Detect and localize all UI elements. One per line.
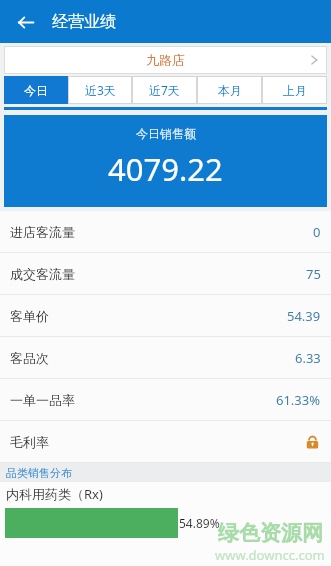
staticText: 4079.22: [108, 148, 223, 190]
staticText: 一单一品率: [10, 392, 75, 408]
staticText: 75: [306, 265, 321, 283]
staticText: 毛利率: [10, 434, 49, 450]
other: Locked: [303, 433, 321, 451]
staticText: 近3天: [85, 82, 116, 98]
staticText: 绿色资源网: [218, 520, 323, 546]
staticText: 今日: [24, 83, 48, 98]
button[interactable]: 客品次: [0, 337, 331, 378]
staticText: 进店客流量: [10, 224, 75, 240]
staticText: 经营业绩: [52, 12, 116, 32]
staticText: 上月: [283, 83, 307, 98]
staticText: 本月: [218, 83, 242, 98]
button[interactable]: 进店客流量: [0, 211, 331, 252]
staticText: 客品次: [10, 350, 49, 366]
button[interactable]: 近7天: [132, 76, 197, 104]
staticText: 品类销售分布: [6, 466, 72, 480]
button[interactable]: 一单一品率: [0, 379, 331, 420]
staticText: www.downcc.com: [215, 546, 325, 564]
button[interactable]: 本月: [197, 76, 262, 104]
button[interactable]: 近3天: [68, 76, 132, 104]
button[interactable]: 毛利率: [0, 421, 331, 462]
button[interactable]: 今日销售额: [4, 115, 327, 207]
button[interactable]: Back: [6, 3, 44, 41]
button[interactable]: 九路店: [4, 46, 327, 74]
staticText: 今日销售额: [136, 126, 196, 141]
staticText: 54.89%: [179, 515, 220, 531]
button[interactable]: 今日: [4, 76, 68, 104]
staticText: 成交客流量: [10, 266, 75, 282]
staticText: 九路店: [146, 52, 185, 68]
button[interactable]: 成交客流量: [0, 253, 331, 294]
staticText: 客单价: [10, 308, 49, 324]
staticText: 近7天: [149, 82, 180, 98]
button[interactable]: 客单价: [0, 295, 331, 336]
staticText: 54.39: [287, 307, 321, 325]
staticText: 6.33: [295, 349, 321, 367]
button[interactable]: 上月: [262, 76, 327, 104]
staticText: 61.33%: [276, 391, 321, 409]
staticText: 0: [313, 223, 321, 241]
staticText: 内科用药类（Rx): [6, 485, 103, 503]
